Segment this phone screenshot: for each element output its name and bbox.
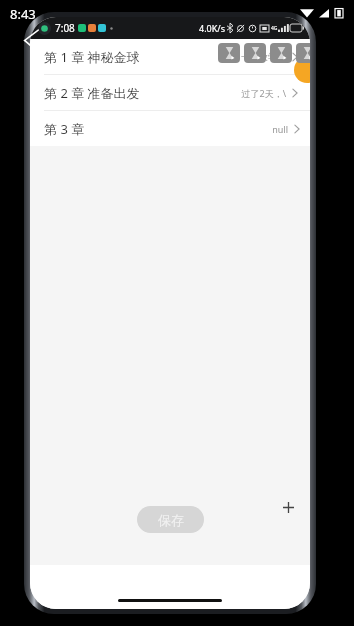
button[interactable]: Tool [218,43,240,63]
staticText: null [272,123,288,135]
staticText: 第 1 章 神秘金球 [44,48,140,66]
staticText: 一天放学， [241,51,286,62]
button[interactable]: Tool [244,43,266,63]
staticText: 第 3 章 [44,120,85,138]
button[interactable]: 保存 [137,506,204,533]
button[interactable]: 第 2 章 准备出发 [30,75,310,110]
staticText: 第 2 章 准备出发 [44,84,140,102]
button[interactable]: Tool [270,43,292,63]
staticText: 4.0K/s [199,22,225,34]
button[interactable]: 第 1 章 神秘金球 [30,39,310,74]
button[interactable]: Chapter action [294,57,310,83]
button[interactable]: 第 3 章 [30,111,310,146]
staticText: 7:08 [55,21,75,35]
staticText: 过了2天，\ [241,87,286,99]
staticText: 8:43 [10,5,36,23]
button[interactable]: Tool [296,43,310,63]
staticText: 4G [271,25,278,32]
staticText: 保存 [158,512,184,528]
button[interactable]: Back [23,29,39,51]
button[interactable]: Add [278,497,298,517]
